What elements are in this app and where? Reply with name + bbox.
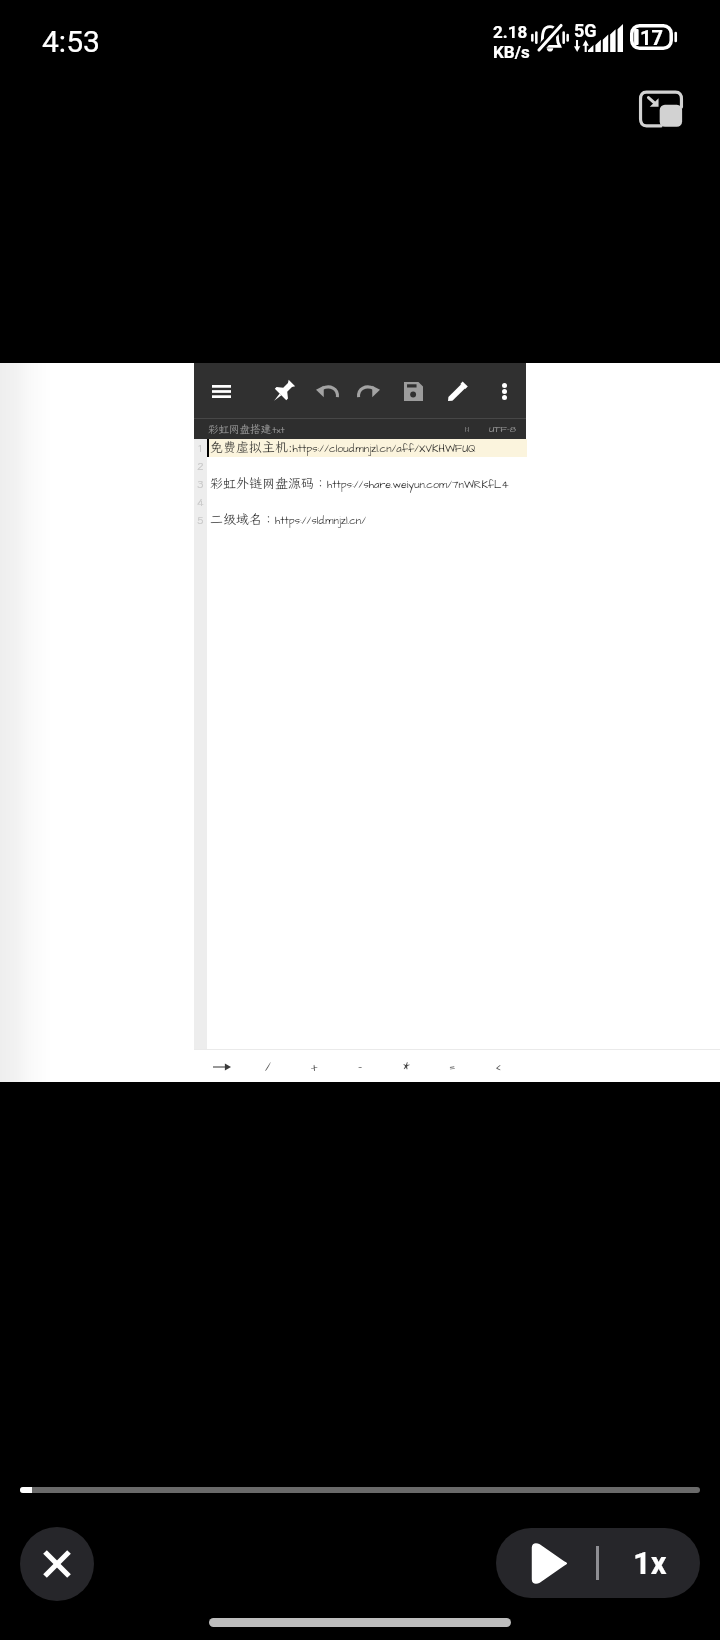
button[interactable]: = [434,1052,470,1082]
staticText: 1x [633,1545,667,1581]
staticText: / [265,1058,271,1076]
staticText: + [311,1058,318,1076]
staticText: 5 [197,513,204,527]
staticText: 1:1 [465,423,470,436]
staticText: UTF-8 [489,423,516,436]
button[interactable]: Save [395,373,431,409]
staticText: KB/s [493,42,530,62]
staticText: 彩虹网盘搭建.txt [208,422,285,437]
button[interactable]: Seek bar [20,1487,700,1493]
staticText: 2 [197,459,204,473]
staticText: 二级域名：https://sld.mnjzl.cn/ [210,511,366,529]
staticText: = [449,1058,456,1076]
button[interactable]: Picture in picture [632,80,690,138]
button[interactable]: + [296,1052,332,1082]
staticText: * [403,1058,410,1076]
button[interactable]: Menu [203,373,239,409]
staticText: 17 [640,26,663,49]
button[interactable]: Redo [351,373,387,409]
staticText: 4 [197,495,204,509]
staticText: 5G [574,20,597,41]
button[interactable]: Pin [265,373,301,409]
button[interactable]: / [250,1052,286,1082]
staticText: 免费虚拟主机:https://cloud.mnjzl.cn/aff/XVKHWF… [210,439,476,457]
staticText: 4:53 [42,24,100,59]
staticText: 3 [197,477,204,491]
button[interactable]: More options [486,373,522,409]
button[interactable]: Tab [204,1052,240,1082]
button[interactable]: Play, 1x speed [496,1528,700,1598]
button[interactable]: * [388,1052,424,1082]
staticText: < [495,1058,502,1076]
button[interactable]: - [342,1052,378,1082]
button[interactable]: < [480,1052,516,1082]
staticText: 2.18 [493,22,528,42]
staticText: 彩虹外链网盘源码：https://share.weiyun.com/7nWRKf… [210,475,509,493]
staticText: 1 [197,441,204,455]
button[interactable]: Undo [308,373,344,409]
button[interactable]: Close [20,1527,94,1601]
staticText: - [358,1058,363,1076]
button[interactable]: Edit [440,373,476,409]
